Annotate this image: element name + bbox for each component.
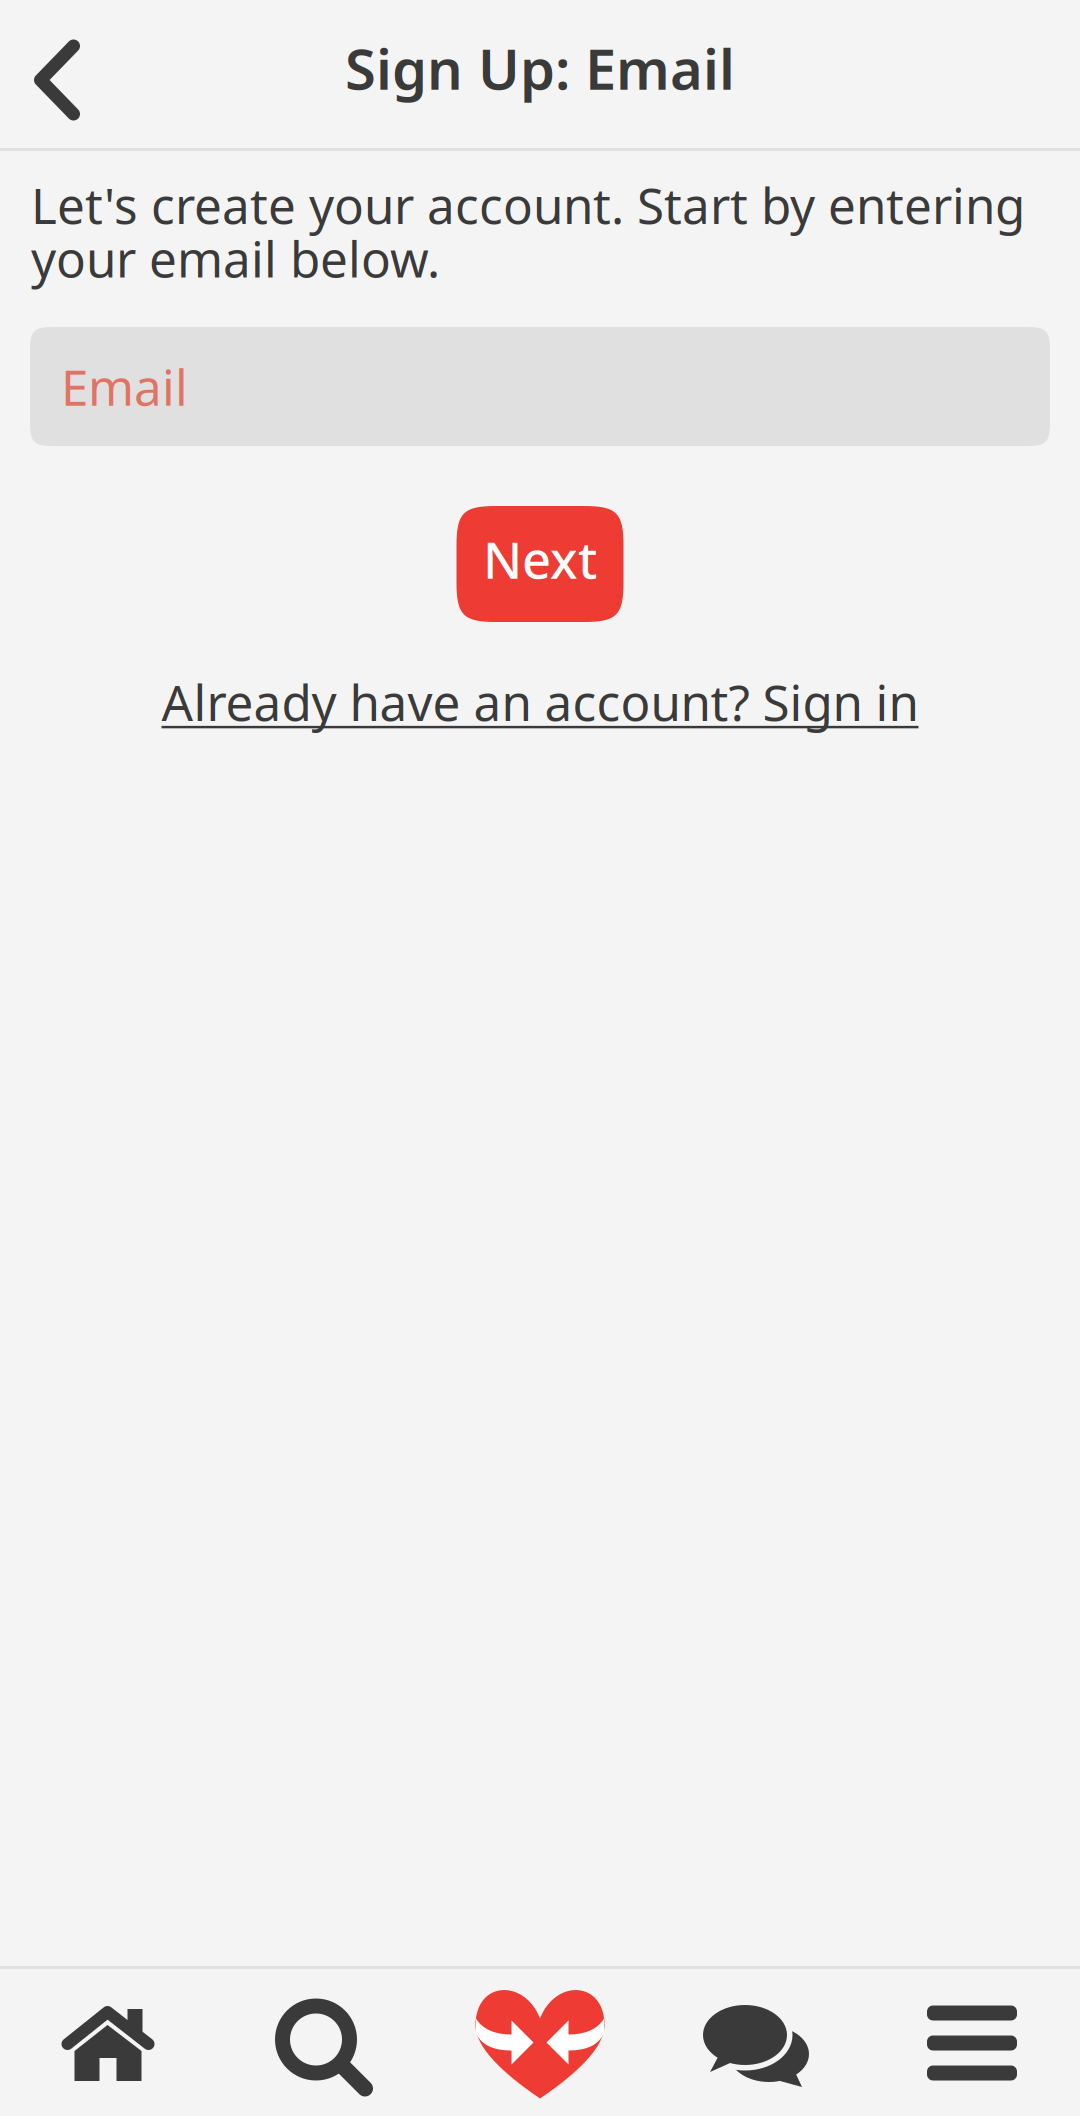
button[interactable]: Search: [216, 1969, 432, 2116]
button[interactable]: Next: [456, 506, 623, 622]
button[interactable]: Home: [0, 1969, 216, 2116]
button[interactable]: Already have an account? Sign in: [161, 669, 918, 734]
button[interactable]: More: [864, 1969, 1080, 2116]
button[interactable]: Messages: [648, 1969, 864, 2116]
staticText: Sign Up: Email: [345, 31, 735, 105]
staticText: Email: [61, 354, 188, 419]
staticText: Already have an account? Sign in: [161, 669, 918, 734]
button[interactable]: Matches: [432, 1969, 648, 2116]
staticText: Let's create your account. Start by ente…: [31, 172, 1025, 291]
button[interactable]: Back: [0, 0, 114, 148]
staticText: Next: [483, 525, 597, 593]
